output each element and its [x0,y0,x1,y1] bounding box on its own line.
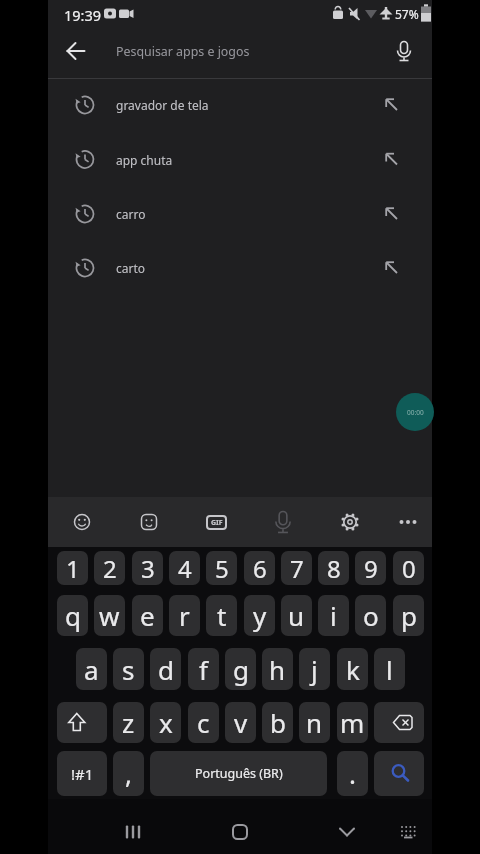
staticText: 57% [395,6,419,22]
button[interactable]: y [244,595,275,636]
staticText: GIF [211,518,223,528]
staticText: 5 [215,552,229,585]
staticText: carro [116,206,146,222]
staticText: , [125,756,132,791]
button[interactable]: 7 [281,551,312,585]
staticText: k [346,652,360,687]
staticText: u [288,598,305,633]
button[interactable]: c [188,702,219,743]
button[interactable] [48,28,432,76]
staticText: n [306,705,323,740]
staticText: app chuta [116,152,173,168]
button[interactable] [392,506,424,538]
button[interactable]: 4 [169,551,200,585]
staticText: g [233,652,249,687]
button[interactable] [200,506,232,538]
staticText: o [363,598,379,633]
button[interactable]: n [299,702,330,743]
button[interactable]: 2 [94,551,125,585]
staticText: a [84,652,99,687]
button[interactable]: !#1 [57,751,107,796]
button[interactable]: d [150,648,181,690]
staticText: 7 [290,552,304,585]
button[interactable]: g [225,648,256,690]
button[interactable]: 5 [206,551,237,585]
staticText: 1 [66,552,80,585]
button[interactable]: 0 [393,551,424,585]
button[interactable] [133,506,165,538]
button[interactable]: p [393,595,424,636]
button[interactable]: 6 [244,551,275,585]
button[interactable]: u [281,595,312,636]
staticText: j [311,652,318,687]
staticText: m [340,705,365,740]
button[interactable]: . [337,751,368,796]
staticText: 0 [402,552,416,585]
button[interactable]: i [318,595,349,636]
button[interactable]: r [169,595,200,636]
button[interactable]: h [262,648,293,690]
button[interactable] [48,78,432,132]
staticText: s [122,652,135,687]
button[interactable] [267,506,299,538]
button[interactable]: 00:00 [396,393,434,431]
button[interactable] [48,241,432,295]
button[interactable] [390,814,426,850]
button[interactable]: x [150,702,181,743]
staticText: z [122,705,135,740]
button[interactable] [57,702,107,743]
button[interactable]: q [57,595,88,636]
button[interactable]: l [374,648,405,690]
button[interactable]: j [299,648,330,690]
button[interactable]: f [188,648,219,690]
button[interactable]: v [225,702,256,743]
staticText: 6 [253,552,267,585]
button[interactable]: m [337,702,368,743]
button[interactable] [334,506,366,538]
button[interactable]: k [337,648,368,690]
button[interactable]: 9 [355,551,386,585]
button[interactable] [48,187,432,241]
button[interactable]: 8 [318,551,349,585]
staticText: Português (BR) [195,765,283,782]
button[interactable] [48,133,432,187]
button[interactable] [115,814,151,850]
staticText: t [217,598,227,633]
button[interactable] [66,506,98,538]
staticText: Pesquisar apps e jogos [116,43,250,60]
button[interactable] [222,814,258,850]
staticText: h [269,652,286,687]
staticText: d [158,652,174,687]
button[interactable] [329,814,365,850]
button[interactable]: 1 [57,551,88,585]
button[interactable]: , [113,751,144,796]
staticText: 3 [141,552,155,585]
staticText: p [401,598,417,633]
staticText: y [253,598,267,633]
button[interactable]: e [132,595,163,636]
button[interactable]: b [262,702,293,743]
staticText: v [234,705,248,740]
button[interactable]: s [113,648,144,690]
button[interactable]: Português (BR) [150,751,327,796]
button[interactable] [374,751,424,796]
staticText: q [65,598,81,633]
button[interactable]: z [113,702,144,743]
staticText: l [386,652,393,687]
button[interactable]: 3 [132,551,163,585]
staticText: 00:00 [407,408,424,417]
button[interactable]: t [206,595,237,636]
staticText: f [199,652,208,687]
button[interactable]: o [355,595,386,636]
staticText: carto [116,260,146,276]
button[interactable]: a [76,648,107,690]
button[interactable]: w [94,595,125,636]
staticText: w [99,598,120,633]
staticText: x [159,705,173,740]
staticText: !#1 [71,764,94,784]
button[interactable] [374,702,424,743]
staticText: r [179,598,190,633]
staticText: b [270,705,286,740]
staticText: 2 [103,552,117,585]
staticText: 4 [178,552,192,585]
